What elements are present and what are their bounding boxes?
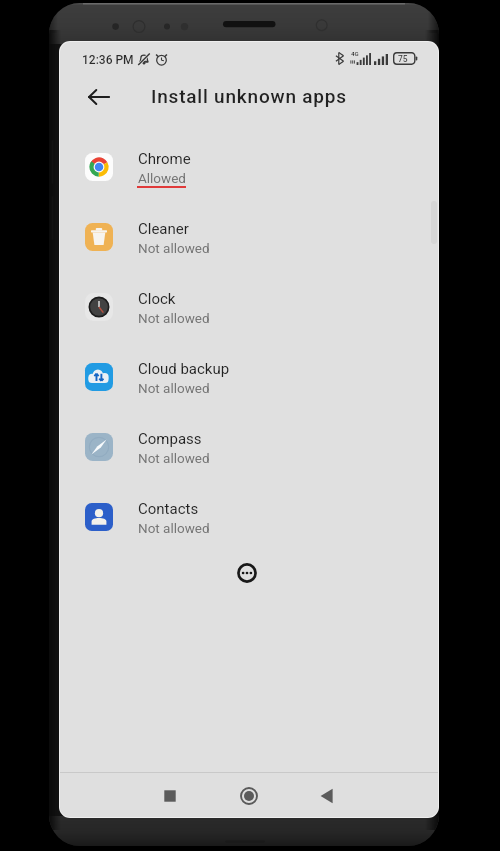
staticText: 75 — [398, 54, 408, 64]
button[interactable]: Home — [229, 776, 269, 816]
staticText: Not allowed — [138, 310, 210, 326]
staticText: 4G — [351, 50, 359, 57]
button[interactable]: More options — [230, 556, 264, 590]
button[interactable]: Cloud backup — [60, 342, 438, 412]
staticText: 12:36 PM — [82, 53, 134, 67]
staticText: Not allowed — [138, 450, 210, 466]
button[interactable]: Compass — [60, 412, 438, 482]
button[interactable]: Recents — [150, 776, 190, 816]
staticText: Not allowed — [138, 380, 210, 396]
button[interactable]: Chrome — [60, 132, 438, 202]
staticText: Clock — [138, 290, 176, 308]
staticText: Chrome — [138, 150, 191, 168]
button[interactable]: Cleaner — [60, 202, 438, 272]
button[interactable]: Back — [81, 79, 117, 115]
button[interactable]: Contacts — [60, 482, 438, 552]
staticText: Compass — [138, 430, 202, 448]
button[interactable]: Clock — [60, 272, 438, 342]
staticText: Cleaner — [138, 220, 189, 238]
staticText: Not allowed — [138, 520, 210, 536]
staticText: Cloud backup — [138, 360, 230, 378]
staticText: Allowed — [138, 170, 186, 186]
staticText: Contacts — [138, 500, 199, 518]
button[interactable]: Back — [307, 776, 347, 816]
staticText: Not allowed — [138, 240, 210, 256]
staticText: Install unknown apps — [151, 85, 347, 107]
